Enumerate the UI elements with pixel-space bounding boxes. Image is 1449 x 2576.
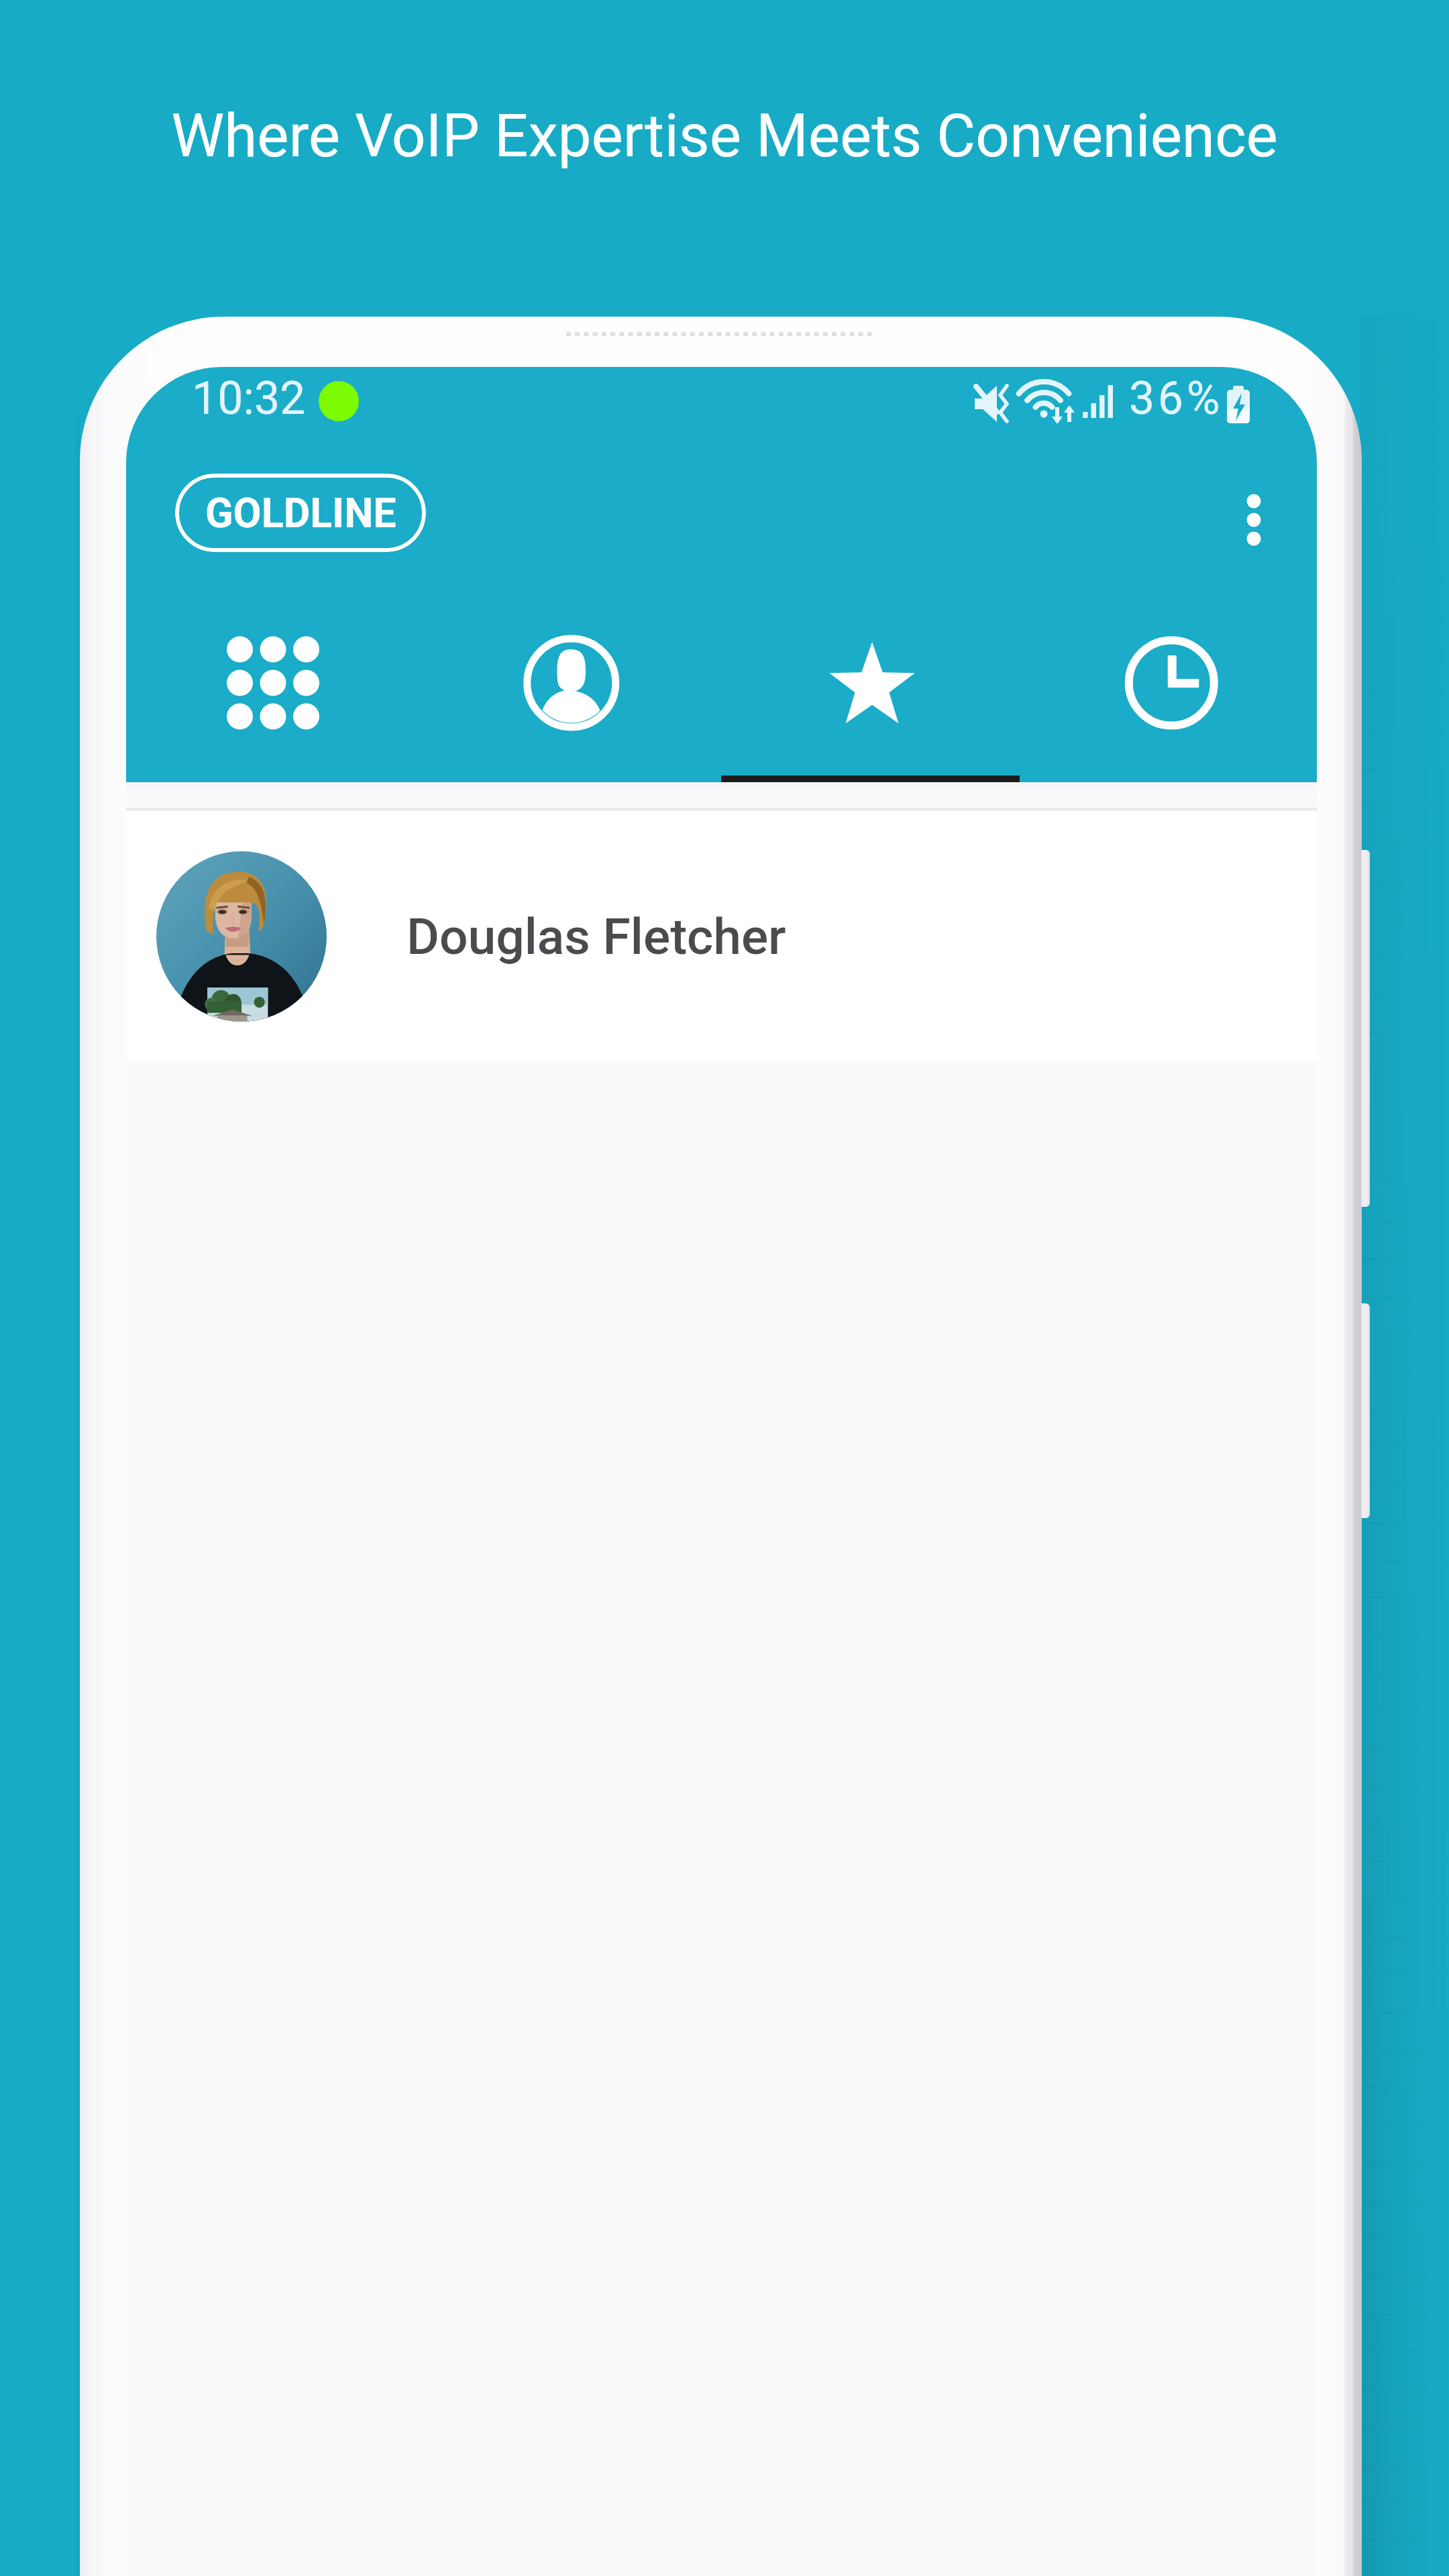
button[interactable]: GOLDLINE xyxy=(175,474,426,552)
staticText: 36% xyxy=(1129,372,1224,425)
staticText: GOLDLINE xyxy=(205,489,396,537)
staticText: Douglas Fletcher xyxy=(407,907,786,966)
button[interactable]: Dialpad xyxy=(126,577,423,782)
button[interactable]: Favourites xyxy=(721,577,1019,782)
staticText: 10:32 xyxy=(192,372,306,425)
button[interactable]: Recents xyxy=(1019,577,1317,782)
button[interactable]: Douglas Fletcher xyxy=(126,811,1317,1061)
button[interactable]: Contacts xyxy=(423,577,721,782)
staticText: Where VoIP Expertise Meets Convenience xyxy=(0,101,1449,170)
button[interactable]: More options xyxy=(1200,466,1307,574)
